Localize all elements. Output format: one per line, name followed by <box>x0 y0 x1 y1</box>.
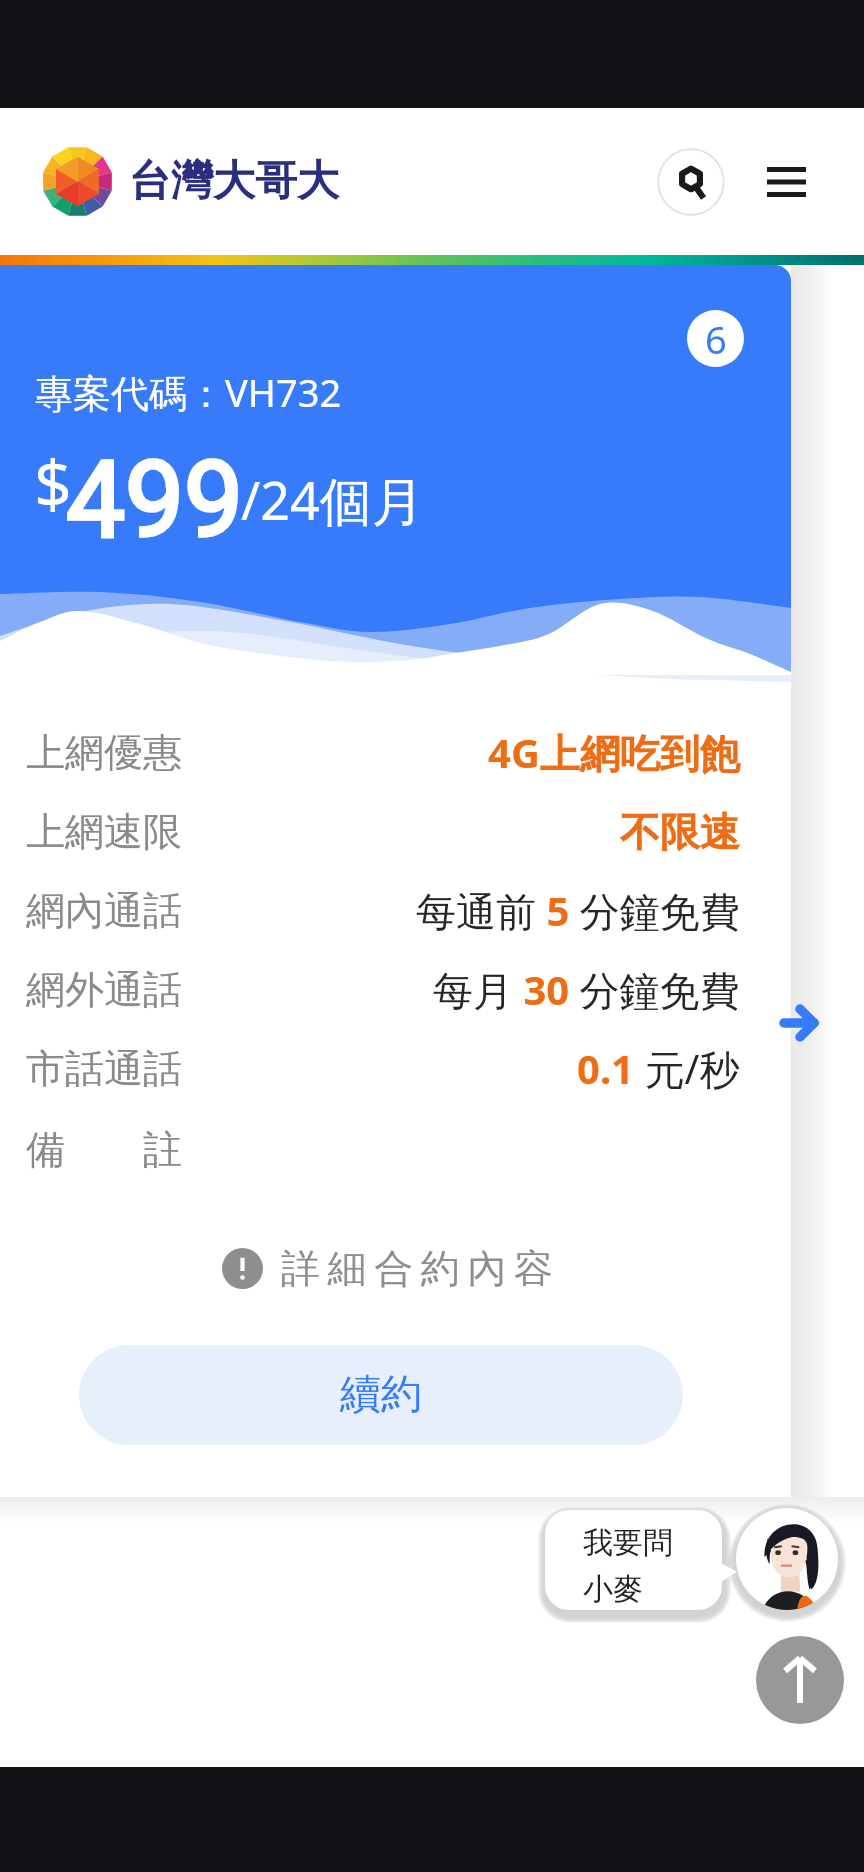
button[interactable]: Menu <box>752 148 820 216</box>
staticText: 詳細合約內容 <box>281 1244 561 1293</box>
staticText: 0.1 元/秒 <box>577 1041 740 1096</box>
staticText: 上網速限 <box>26 807 182 856</box>
button[interactable]: Search <box>657 148 725 216</box>
staticText: 4G上網吃到飽 <box>488 725 740 780</box>
button[interactable]: 6 <box>687 310 744 367</box>
staticText: 續約 <box>340 1369 422 1421</box>
staticText: 每月 30 分鐘免費 <box>433 962 740 1017</box>
button[interactable]: 續約 <box>79 1345 683 1445</box>
staticText: 備 註 <box>26 1121 182 1174</box>
staticText: 每通前 5 分鐘免費 <box>416 883 740 938</box>
staticText: 台灣大哥大 <box>129 155 339 208</box>
button[interactable]: Ask assistant <box>736 1508 838 1610</box>
staticText: $ <box>34 437 72 527</box>
staticText: 上網優惠 <box>26 728 182 777</box>
staticText: 499 <box>66 439 244 562</box>
staticText: /24個月 <box>241 464 424 535</box>
staticText: 6 <box>705 313 727 365</box>
staticText: 市話通話 <box>26 1044 182 1093</box>
staticText: 我要問 <box>583 1524 673 1562</box>
staticText: 專案代碼：VH732 <box>35 366 342 418</box>
button[interactable]: 6 <box>0 265 791 1497</box>
button[interactable]: 我要問 <box>545 1510 722 1610</box>
staticText: 網內通話 <box>26 886 182 935</box>
button[interactable]: Next plan <box>769 993 829 1053</box>
button[interactable]: Scroll to top <box>756 1636 844 1724</box>
button[interactable]: 詳細合約內容 <box>222 1243 561 1293</box>
staticText: 不限速 <box>620 807 740 857</box>
staticText: 網外通話 <box>26 965 182 1014</box>
staticText: 小麥 <box>583 1570 643 1608</box>
